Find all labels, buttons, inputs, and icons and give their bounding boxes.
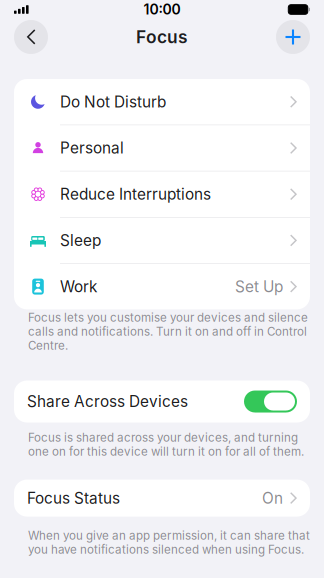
button[interactable]: Work <box>14 264 310 309</box>
staticText: On <box>262 489 283 507</box>
staticText: Sleep <box>60 231 101 250</box>
staticText: When you give an app permission, it can … <box>28 529 310 557</box>
button[interactable]: Share Across Devices <box>14 380 310 422</box>
staticText: Reduce Interruptions <box>60 185 211 203</box>
staticText: Work <box>60 277 97 296</box>
button[interactable]: Sleep <box>14 218 310 263</box>
button[interactable]: Add Focus <box>275 19 311 55</box>
staticText: Set Up <box>235 277 283 296</box>
staticText: 10:00 <box>143 1 180 18</box>
staticText: Do Not Disturb <box>60 92 166 111</box>
button[interactable]: Back <box>13 19 49 55</box>
staticText: Focus lets you customise your devices an… <box>28 310 308 352</box>
staticText: Focus <box>136 26 188 47</box>
staticText: Personal <box>60 139 124 157</box>
staticText: Share Across Devices <box>27 392 188 411</box>
button[interactable]: Do Not Disturb <box>14 79 310 125</box>
button[interactable]: Personal <box>14 125 310 171</box>
button[interactable]: Reduce Interruptions <box>14 171 310 217</box>
button[interactable]: Focus Status <box>14 480 310 517</box>
staticText: Focus Status <box>27 489 120 507</box>
staticText: Focus is shared across your devices, and… <box>28 430 304 459</box>
